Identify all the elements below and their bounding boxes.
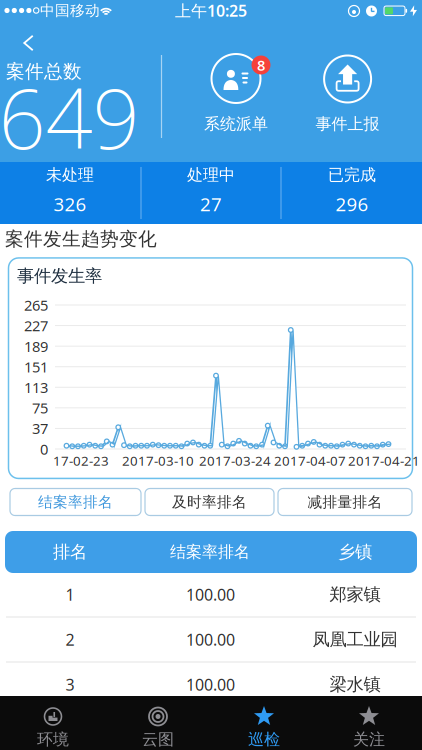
staticText: 2017-03-24: [199, 452, 271, 469]
staticText: 3: [65, 674, 74, 695]
staticText: 未处理: [46, 165, 94, 185]
staticText: 113: [24, 378, 48, 397]
staticText: 巡检: [248, 730, 280, 749]
staticText: 17-02-23: [53, 452, 109, 469]
staticText: 事件上报: [316, 114, 380, 134]
staticText: 郑家镇: [329, 584, 380, 605]
staticText: 100.00: [186, 584, 235, 605]
staticText: 649: [0, 62, 139, 172]
staticText: 系统派单: [204, 114, 268, 134]
staticText: 梁水镇: [329, 674, 380, 695]
staticText: 凤凰工业园: [312, 629, 397, 650]
staticText: 8: [257, 55, 265, 75]
staticText: 100.00: [186, 629, 235, 650]
button[interactable]: 云图: [105, 695, 210, 749]
staticText: 75: [32, 398, 48, 418]
staticText: 189: [24, 336, 48, 356]
staticText: 减排量排名: [307, 493, 382, 511]
staticText: 关注: [353, 730, 385, 749]
staticText: 326: [53, 192, 86, 216]
staticText: 265: [24, 295, 48, 315]
staticText: 2017-03-10: [122, 452, 194, 469]
staticText: 151: [24, 357, 48, 376]
button[interactable]: 及时率排名: [145, 488, 274, 515]
button[interactable]: Back: [14, 26, 43, 60]
staticText: 2017-04-07: [274, 452, 346, 469]
staticText: 云图: [142, 730, 174, 749]
staticText: 296: [335, 192, 368, 216]
button[interactable]: 环境: [0, 695, 105, 749]
staticText: 上午10:25: [175, 0, 247, 21]
staticText: 排名: [53, 541, 87, 563]
staticText: 处理中: [187, 165, 235, 185]
staticText: 结案率排名: [170, 542, 250, 562]
staticText: 2017-04-21: [348, 452, 420, 469]
staticText: 27: [200, 192, 222, 216]
button[interactable]: 结案率排名: [10, 488, 141, 515]
button[interactable]: 减排量排名: [278, 488, 412, 515]
staticText: 环境: [37, 730, 69, 749]
staticText: 37: [32, 419, 48, 438]
button[interactable]: 事件上报: [293, 24, 403, 134]
staticText: 中国移动: [40, 1, 100, 19]
button[interactable]: 关注: [316, 695, 421, 749]
staticText: 案件总数: [6, 60, 82, 83]
staticText: 案件发生趋势变化: [5, 227, 157, 250]
staticText: 乡镇: [338, 541, 372, 563]
button[interactable]: 8: [181, 23, 291, 133]
staticText: 2: [65, 629, 74, 650]
staticText: 事件发生率: [17, 265, 102, 287]
staticText: 0: [40, 439, 48, 459]
staticText: 已完成: [328, 165, 376, 185]
staticText: 1: [65, 584, 74, 605]
button[interactable]: 巡检: [211, 695, 316, 749]
staticText: 100.00: [186, 674, 235, 695]
staticText: 及时率排名: [172, 493, 247, 511]
staticText: 227: [24, 316, 48, 335]
staticText: 结案率排名: [38, 493, 113, 511]
